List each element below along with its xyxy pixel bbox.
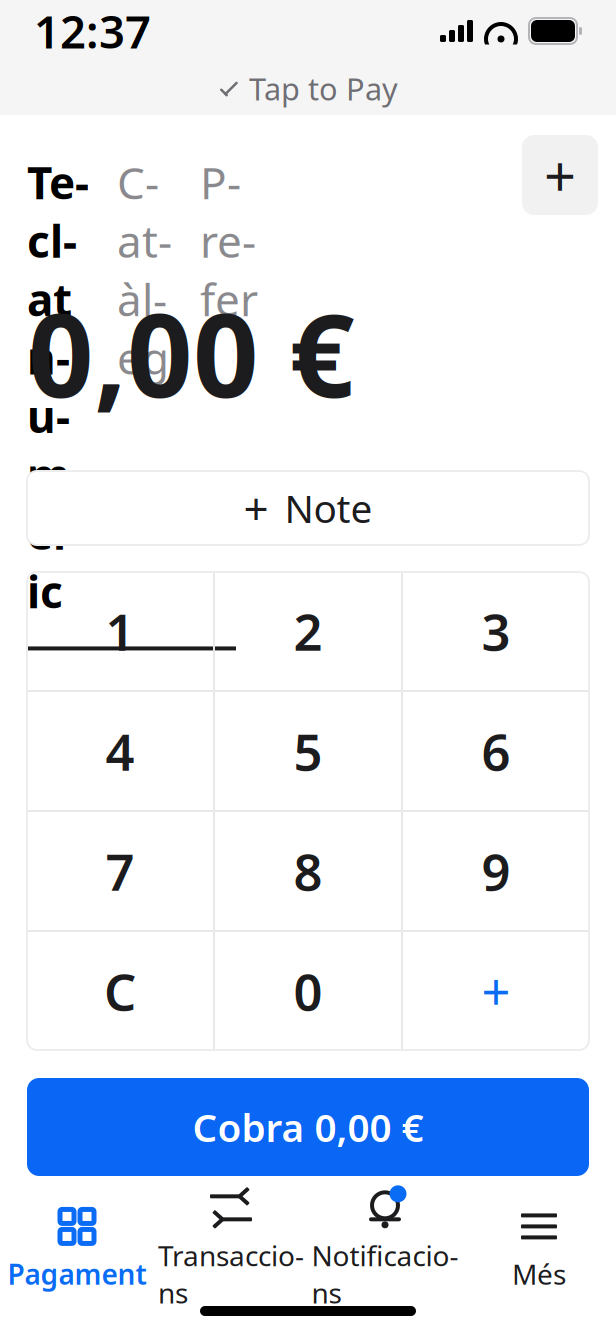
staticText: 12:37 bbox=[34, 1, 151, 61]
staticText: 5 bbox=[293, 717, 322, 785]
staticText: 4 bbox=[105, 717, 134, 785]
button[interactable]: + bbox=[27, 471, 589, 545]
staticText: Transaccions bbox=[158, 1237, 304, 1311]
button[interactable]: Teclat numèric bbox=[27, 153, 89, 620]
button[interactable]: Catàleg bbox=[117, 153, 172, 387]
staticText: 6 bbox=[481, 717, 510, 785]
button[interactable]: Add bbox=[522, 135, 598, 215]
staticText: 7 bbox=[105, 837, 134, 905]
button[interactable]: 1 bbox=[27, 572, 213, 690]
staticText: Tap to Pay bbox=[249, 68, 398, 109]
button[interactable]: C bbox=[27, 932, 213, 1050]
staticText: 2 bbox=[293, 597, 322, 665]
staticText: Cobra 0,00 € bbox=[192, 1101, 423, 1153]
button[interactable]: Prefer bbox=[200, 153, 258, 328]
button[interactable]: 6 bbox=[403, 692, 589, 810]
button[interactable]: + bbox=[403, 932, 589, 1050]
button[interactable]: 2 bbox=[215, 572, 401, 690]
button[interactable]: 5 bbox=[215, 692, 401, 810]
staticText: + bbox=[544, 138, 576, 212]
button[interactable]: 8 bbox=[215, 812, 401, 930]
staticText: 0 bbox=[293, 957, 322, 1025]
staticText: + bbox=[243, 479, 268, 537]
staticText: Més bbox=[512, 1255, 566, 1293]
button[interactable]: 7 bbox=[27, 812, 213, 930]
staticText: Prefer bbox=[200, 153, 258, 328]
button[interactable]: 4 bbox=[27, 692, 213, 810]
staticText: 0,00 € bbox=[28, 277, 355, 429]
staticText: Pagament bbox=[7, 1255, 146, 1293]
staticText: Teclat numèric bbox=[27, 153, 89, 620]
staticText: + bbox=[481, 957, 510, 1025]
staticText: 1 bbox=[105, 597, 134, 665]
staticText: 9 bbox=[481, 837, 510, 905]
button[interactable]: Pagament bbox=[0, 1205, 154, 1295]
staticText: Catàleg bbox=[117, 153, 172, 387]
button[interactable]: 9 bbox=[403, 812, 589, 930]
staticText: 3 bbox=[481, 597, 510, 665]
button[interactable]: 3 bbox=[403, 572, 589, 690]
button[interactable]: 0 bbox=[215, 932, 401, 1050]
staticText: Notificacions bbox=[311, 1237, 458, 1311]
button[interactable]: Transaccions bbox=[154, 1205, 308, 1295]
button[interactable]: Cobra 0,00 € bbox=[27, 1078, 589, 1176]
staticText: 8 bbox=[293, 837, 322, 905]
button[interactable]: Notificacions bbox=[308, 1205, 462, 1295]
staticText: C bbox=[104, 957, 136, 1025]
button[interactable]: Més bbox=[462, 1205, 616, 1295]
staticText: Note bbox=[284, 482, 372, 534]
